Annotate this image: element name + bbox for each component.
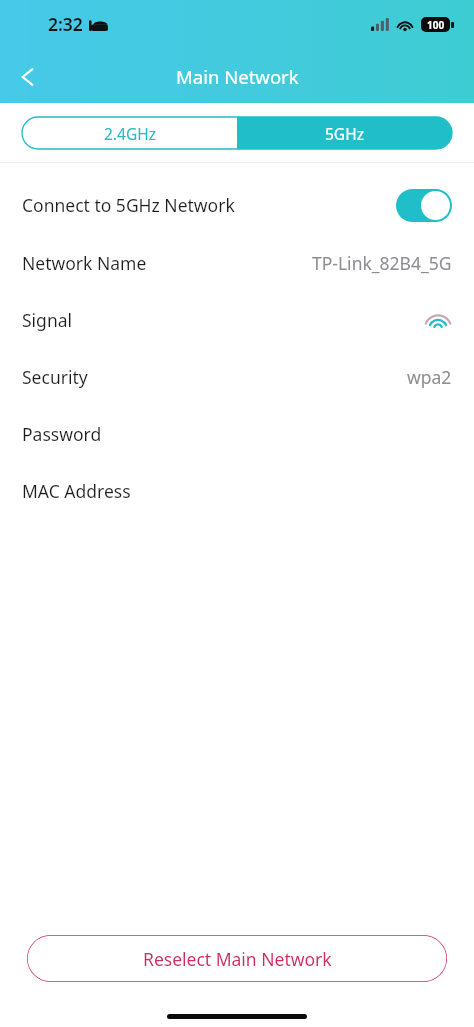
staticText: Network Name (22, 251, 147, 275)
button[interactable]: Password (0, 405, 474, 462)
button[interactable]: Security (0, 348, 474, 405)
button[interactable]: Network Name (0, 234, 474, 291)
staticText: Password (22, 422, 102, 446)
staticText: MAC Address (22, 479, 131, 503)
staticText: 100 (427, 18, 445, 32)
button[interactable]: MAC Address (0, 462, 474, 519)
button[interactable]: Connect to 5GHz Network (0, 176, 474, 234)
button[interactable]: Reselect Main Network (27, 935, 447, 982)
button[interactable]: Signal (0, 291, 474, 348)
staticText: wpa2 (407, 365, 452, 389)
staticText: TP-Link_82B4_5G (312, 251, 452, 275)
staticText: Connect to 5GHz Network (22, 193, 235, 217)
staticText: Main Network (176, 64, 299, 89)
button[interactable]: Back (6, 55, 50, 99)
staticText: 5GHz (325, 123, 364, 144)
staticText: Signal (22, 308, 73, 332)
staticText: Security (22, 365, 88, 389)
button[interactable]: Connect to 5GHz Network toggle (396, 189, 452, 222)
other: Signal strength (424, 309, 452, 330)
button[interactable]: 5GHz (237, 117, 452, 149)
button[interactable]: 2.4GHz (22, 117, 237, 149)
staticText: Reselect Main Network (143, 947, 332, 971)
staticText: 2:32 (48, 12, 83, 36)
staticText: 2.4GHz (104, 123, 156, 144)
